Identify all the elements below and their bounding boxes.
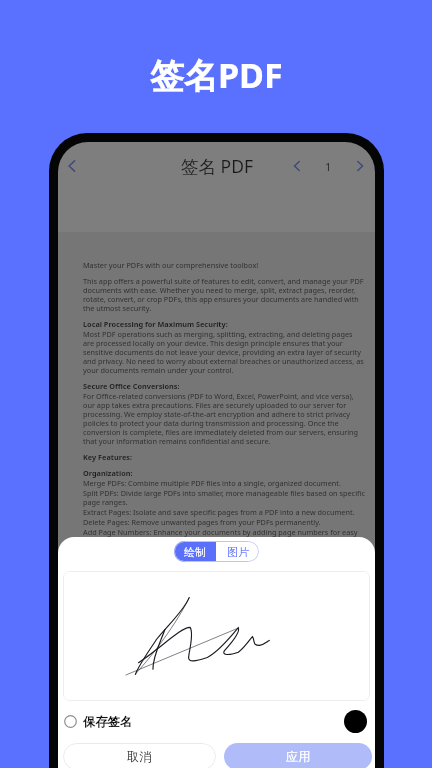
button[interactable]: 应用 [224, 743, 372, 768]
staticText: Organization: [83, 468, 133, 478]
staticText: Merge PDFs: Combine multiple PDF files i… [83, 478, 341, 488]
staticText: Add Page Numbers: Enhance your documents… [83, 527, 365, 546]
button[interactable]: Previous page [282, 151, 312, 181]
staticText: Delete Pages: Remove unwanted pages from… [83, 517, 321, 527]
staticText: 签名 PDF [181, 154, 253, 178]
staticText: 1 [325, 159, 332, 174]
staticText: 取消 [127, 749, 152, 764]
staticText: Master your PDFs with our comprehensive … [83, 260, 259, 270]
staticText: Split PDFs: Divide large PDFs into small… [83, 488, 365, 507]
staticText: Most PDF operations such as merging, spl… [83, 329, 365, 375]
staticText: 应用 [286, 749, 311, 764]
staticText: Secure Office Conversions: [83, 381, 180, 391]
button[interactable]: Back [58, 152, 86, 180]
staticText: Extract Pages: Isolate and save specific… [83, 507, 355, 517]
button[interactable]: 保存签名 [64, 714, 133, 729]
button[interactable]: Next page [345, 151, 375, 181]
staticText: 绘制 [184, 545, 206, 559]
staticText: This app offers a powerful suite of feat… [83, 276, 365, 313]
staticText: 保存签名 [83, 714, 133, 729]
staticText: 签名PDF [150, 52, 283, 98]
button[interactable]: 绘制 [174, 541, 216, 562]
staticText: Key Features: [83, 452, 132, 462]
button[interactable]: Pen colour [344, 710, 367, 733]
staticText: 图片 [227, 545, 249, 559]
staticText: Local Processing for Maximum Security: [83, 319, 228, 329]
staticText: For Office-related conversions (PDF to W… [83, 391, 365, 446]
button[interactable]: 图片 [216, 541, 259, 562]
button[interactable]: 取消 [63, 743, 216, 768]
